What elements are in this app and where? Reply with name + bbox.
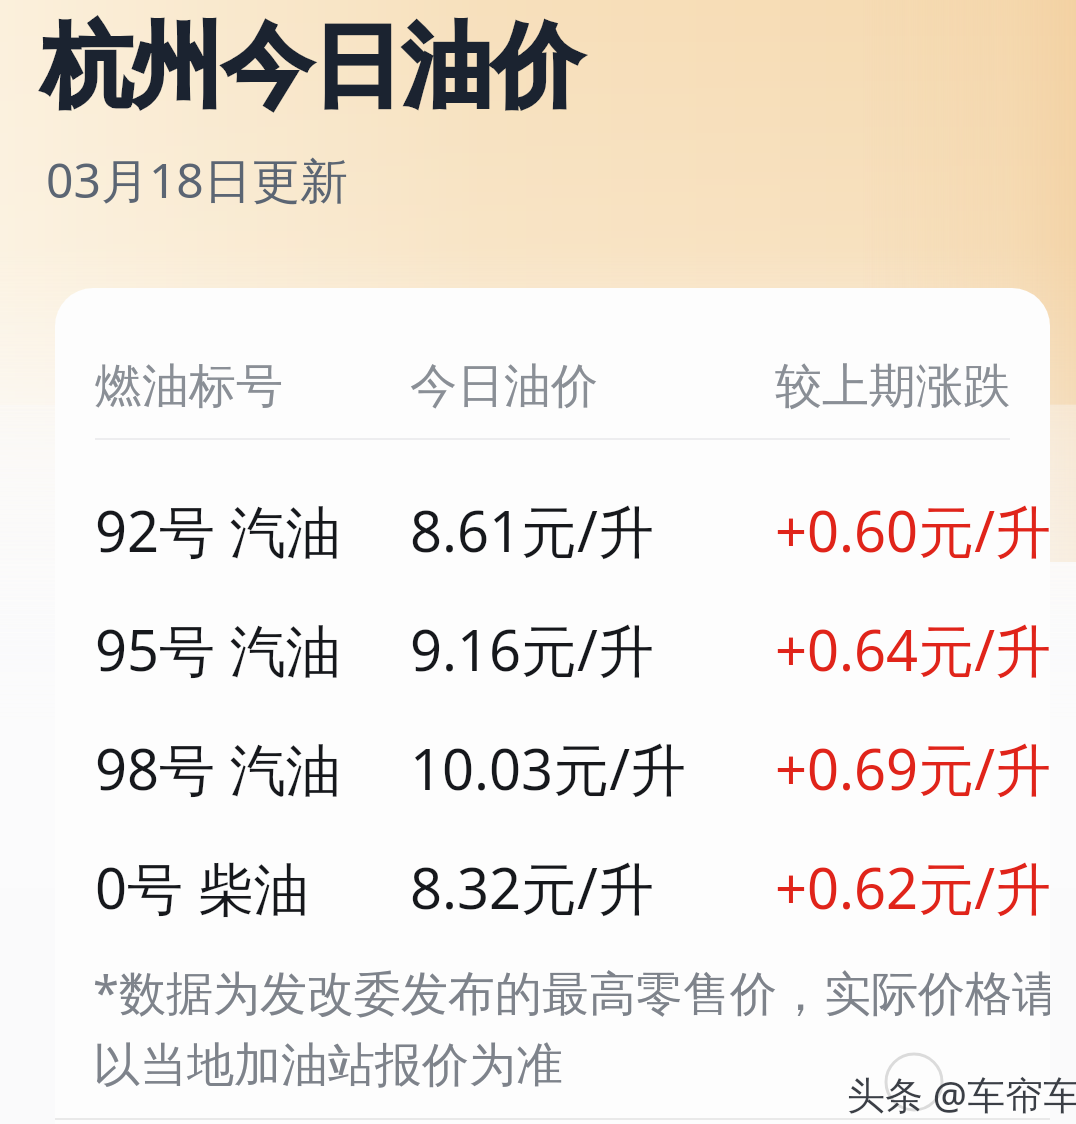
button[interactable]: 表头 (55, 330, 1050, 442)
staticText: +0.64元/升 (775, 611, 1050, 687)
staticText: 杭州今日油价 (42, 10, 582, 123)
button[interactable]: 92号 汽油 8.61元/升 +0.60元/升 (55, 474, 1050, 586)
staticText: 今日油价 (410, 357, 598, 416)
staticText: 以当地加油站报价为准 (93, 1036, 563, 1095)
staticText: 92号 汽油 (95, 492, 342, 568)
staticText: +0.69元/升 (775, 730, 1050, 806)
staticText: 8.61元/升 (410, 492, 654, 568)
staticText: 10.03元/升 (410, 730, 686, 806)
staticText: +0.60元/升 (775, 492, 1050, 568)
staticText: 03月18日更新 (46, 147, 348, 213)
staticText: 9.16元/升 (410, 611, 654, 687)
staticText: 0号 柴油 (95, 849, 310, 925)
button[interactable]: 98号 汽油 10.03元/升 +0.69元/升 (55, 712, 1050, 824)
staticText: 98号 汽油 (95, 730, 342, 806)
staticText: 较上期涨跌 (775, 357, 1010, 416)
staticText: 燃油标号 (95, 357, 283, 416)
button[interactable]: 95号 汽油 9.16元/升 +0.64元/升 (55, 593, 1050, 705)
staticText: 头条 @车帘车事 (846, 1068, 1076, 1120)
staticText: +0.62元/升 (775, 849, 1050, 925)
button[interactable]: 0号 柴油 8.32元/升 +0.62元/升 (55, 831, 1050, 943)
staticText: 95号 汽油 (95, 611, 342, 687)
staticText: 8.32元/升 (410, 849, 654, 925)
staticText: *数据为发改委发布的最高零售价，实际价格请 (93, 960, 1050, 1024)
